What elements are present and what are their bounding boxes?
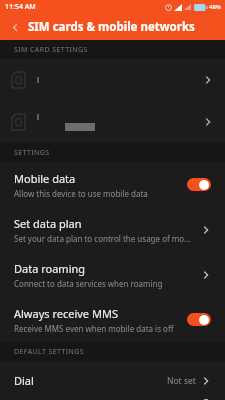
button[interactable] — [0, 101, 225, 143]
staticText: 11:54 AM — [5, 2, 36, 12]
staticText: Set your data plan to control the usage … — [14, 233, 195, 244]
staticText: Mobile data — [14, 171, 76, 186]
button[interactable] — [0, 59, 225, 101]
button[interactable]: Data roaming — [0, 252, 225, 297]
staticText: DEFAULT SETTINGS — [14, 347, 85, 357]
staticText: Dial — [14, 373, 167, 388]
button[interactable]: Mobile data — [0, 162, 225, 207]
staticText: Not set — [167, 375, 196, 387]
staticText: Set data plan — [14, 216, 82, 231]
button[interactable]: Dial — [0, 361, 225, 400]
staticText: SIM CARD SETTINGS — [14, 45, 88, 55]
button[interactable]: Set data plan — [0, 207, 225, 252]
staticText: SIM cards & mobile networks — [28, 19, 195, 35]
button[interactable]: Back — [5, 17, 25, 37]
staticText: 48% — [209, 3, 221, 11]
button[interactable]: Always receive MMS — [0, 297, 225, 342]
staticText: Receive MMS even when mobile data is off — [14, 323, 174, 334]
staticText: Always receive MMS — [14, 306, 118, 321]
staticText: Data roaming — [14, 261, 86, 276]
staticText: Connect to data services when roaming — [14, 278, 163, 289]
staticText: Allow this device to use mobile data — [14, 188, 148, 199]
staticText: SETTINGS — [14, 148, 50, 158]
